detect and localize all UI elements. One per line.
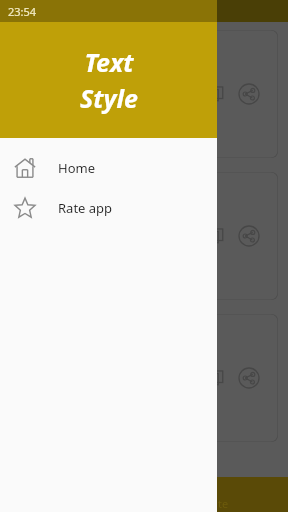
staticText: Text (84, 45, 134, 79)
staticText: Rate app (58, 199, 113, 217)
staticText: Style (80, 81, 138, 115)
staticText: 23:54 (8, 4, 37, 19)
other: Home (14, 157, 36, 179)
staticText: late (209, 496, 229, 511)
other: Rate app (14, 197, 36, 219)
staticText: g (209, 478, 218, 496)
button[interactable]: Rate app (0, 188, 217, 228)
staticText: Home (58, 159, 95, 177)
button[interactable]: Home (0, 148, 217, 188)
